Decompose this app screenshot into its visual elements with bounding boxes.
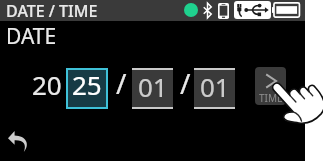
staticText: DATE / TIME: [6, 0, 98, 21]
button[interactable]: Back: [8, 131, 30, 152]
staticText: 25: [72, 67, 102, 102]
staticText: /: [180, 64, 191, 102]
staticText: 01: [138, 69, 168, 104]
button[interactable]: 01: [132, 68, 173, 109]
staticText: 20: [32, 67, 62, 102]
button[interactable]: 01: [194, 68, 235, 109]
button[interactable]: 25: [66, 68, 108, 109]
button[interactable]: Time: [255, 67, 286, 105]
staticText: DATE: [6, 22, 57, 51]
staticText: 01: [200, 69, 230, 104]
staticText: /: [116, 64, 127, 102]
staticText: TIME: [259, 91, 283, 105]
